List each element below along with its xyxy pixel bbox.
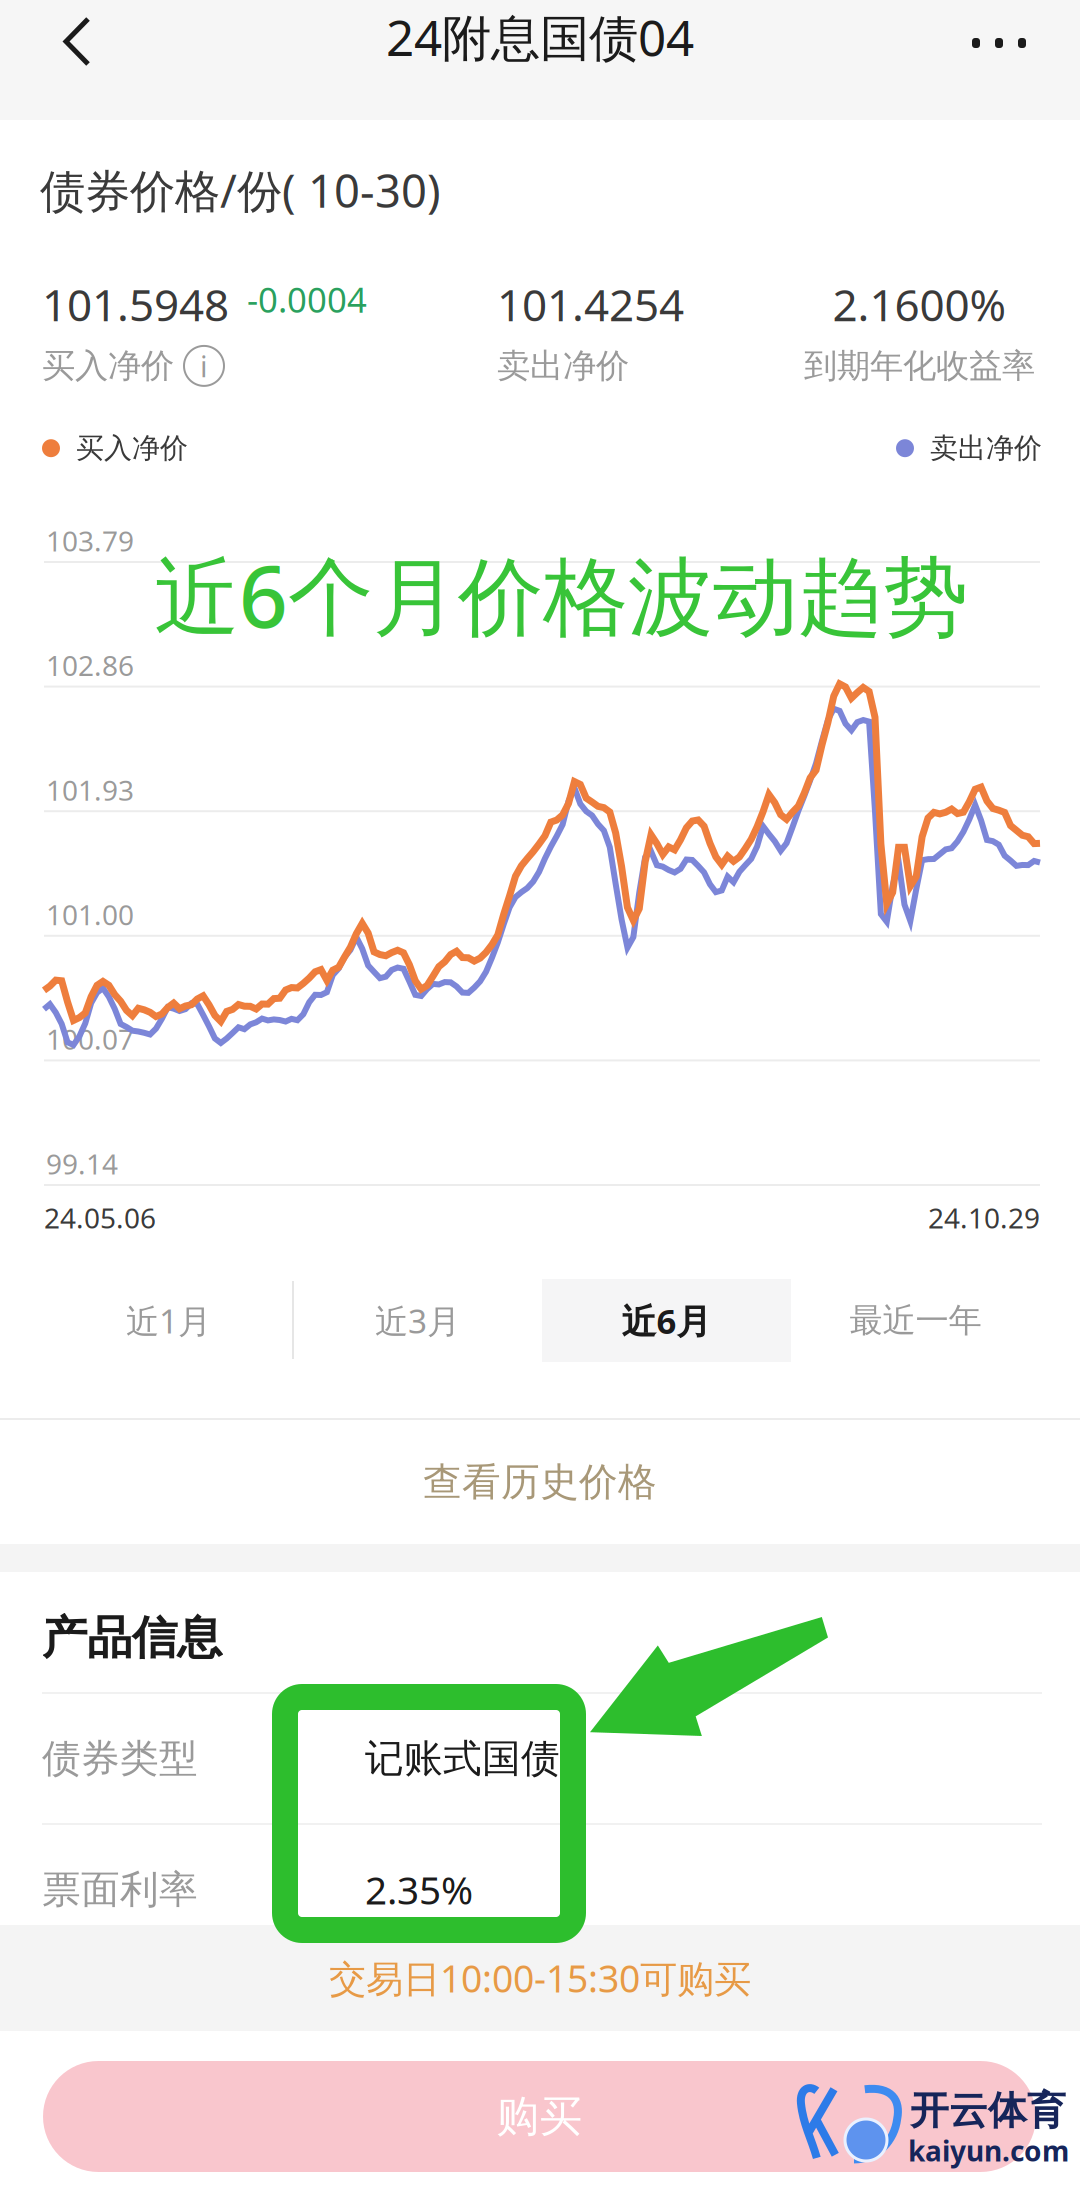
staticText: 2.1600% bbox=[832, 275, 1006, 333]
staticText: -0.0004 bbox=[247, 276, 367, 322]
staticText: 买入净价 bbox=[42, 345, 174, 386]
button[interactable]: 最近一年 bbox=[791, 1279, 1040, 1362]
button[interactable]: 近3月 bbox=[293, 1279, 542, 1362]
staticText: 102.86 bbox=[46, 647, 134, 684]
staticText: 卖出净价 bbox=[930, 431, 1042, 465]
staticText: 24.10.29 bbox=[928, 1199, 1040, 1236]
staticText: 票面利率 bbox=[42, 1866, 198, 1913]
staticText: 债券价格/份( 10-30) bbox=[40, 160, 441, 220]
staticText: 最近一年 bbox=[849, 1300, 981, 1341]
staticText: 2.35% bbox=[365, 1864, 473, 1915]
staticText: 101.5948 bbox=[42, 275, 229, 333]
staticText: 24.05.06 bbox=[44, 1199, 156, 1236]
staticText: 近3月 bbox=[375, 1298, 460, 1343]
button[interactable]: About net buy price bbox=[184, 346, 224, 386]
staticText: 101.93 bbox=[46, 771, 134, 808]
staticText: 近6个月价格波动趋势 bbox=[154, 538, 968, 651]
staticText: 产品信息 bbox=[42, 1610, 222, 1666]
staticText: 查看历史价格 bbox=[423, 1458, 657, 1506]
staticText: i bbox=[200, 346, 208, 385]
button[interactable]: 近6月 bbox=[542, 1279, 791, 1362]
staticText: 开云体育 bbox=[910, 2087, 1066, 2134]
staticText: 101.00 bbox=[46, 896, 134, 933]
staticText: 买入净价 bbox=[76, 431, 188, 465]
staticText: 101.4254 bbox=[497, 275, 684, 333]
staticText: 债券类型 bbox=[42, 1735, 198, 1782]
button[interactable]: More options bbox=[944, 8, 1054, 78]
staticText: 购买 bbox=[496, 2090, 582, 2143]
staticText: 记账式国债 bbox=[365, 1735, 560, 1782]
staticText: 到期年化收益率 bbox=[804, 345, 1035, 386]
staticText: 近6月 bbox=[621, 1297, 711, 1343]
staticText: 24附息国债04 bbox=[386, 4, 694, 69]
staticText: 103.79 bbox=[46, 522, 134, 559]
staticText: 交易日10:00-15:30可购买 bbox=[329, 1953, 751, 2003]
button[interactable]: 近1月 bbox=[44, 1279, 293, 1362]
button[interactable]: 购买 bbox=[43, 2061, 1036, 2172]
button[interactable]: Back bbox=[32, 0, 122, 83]
staticText: 近1月 bbox=[126, 1298, 211, 1343]
staticText: kaiyun.com bbox=[908, 2132, 1069, 2169]
staticText: 100.07 bbox=[46, 1020, 134, 1058]
button[interactable]: 查看历史价格 bbox=[0, 1420, 1080, 1544]
staticText: 卖出净价 bbox=[497, 345, 629, 386]
staticText: 99.14 bbox=[46, 1145, 118, 1182]
